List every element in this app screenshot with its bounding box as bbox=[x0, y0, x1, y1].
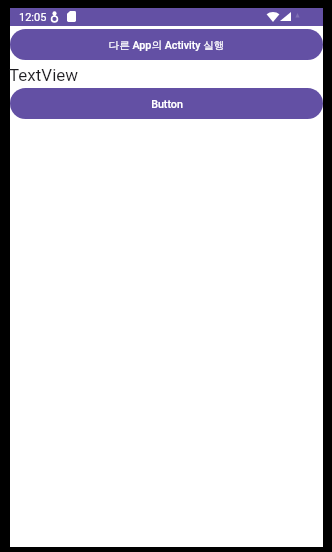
staticText: Button bbox=[151, 98, 183, 111]
other: Mobile signal bbox=[280, 12, 291, 21]
staticText: 12:05 bbox=[19, 11, 47, 24]
staticText: 다른 App의 Activity 실행 bbox=[108, 39, 225, 52]
other: Screenshot saved bbox=[67, 11, 76, 22]
other: Wi-Fi bbox=[267, 12, 279, 22]
other: Location sharing active bbox=[51, 11, 58, 22]
staticText: TextView bbox=[9, 65, 79, 85]
button[interactable]: 다른 App의 Activity 실행 bbox=[10, 29, 323, 60]
other: Battery bbox=[295, 12, 300, 21]
button[interactable]: Button bbox=[10, 88, 323, 119]
